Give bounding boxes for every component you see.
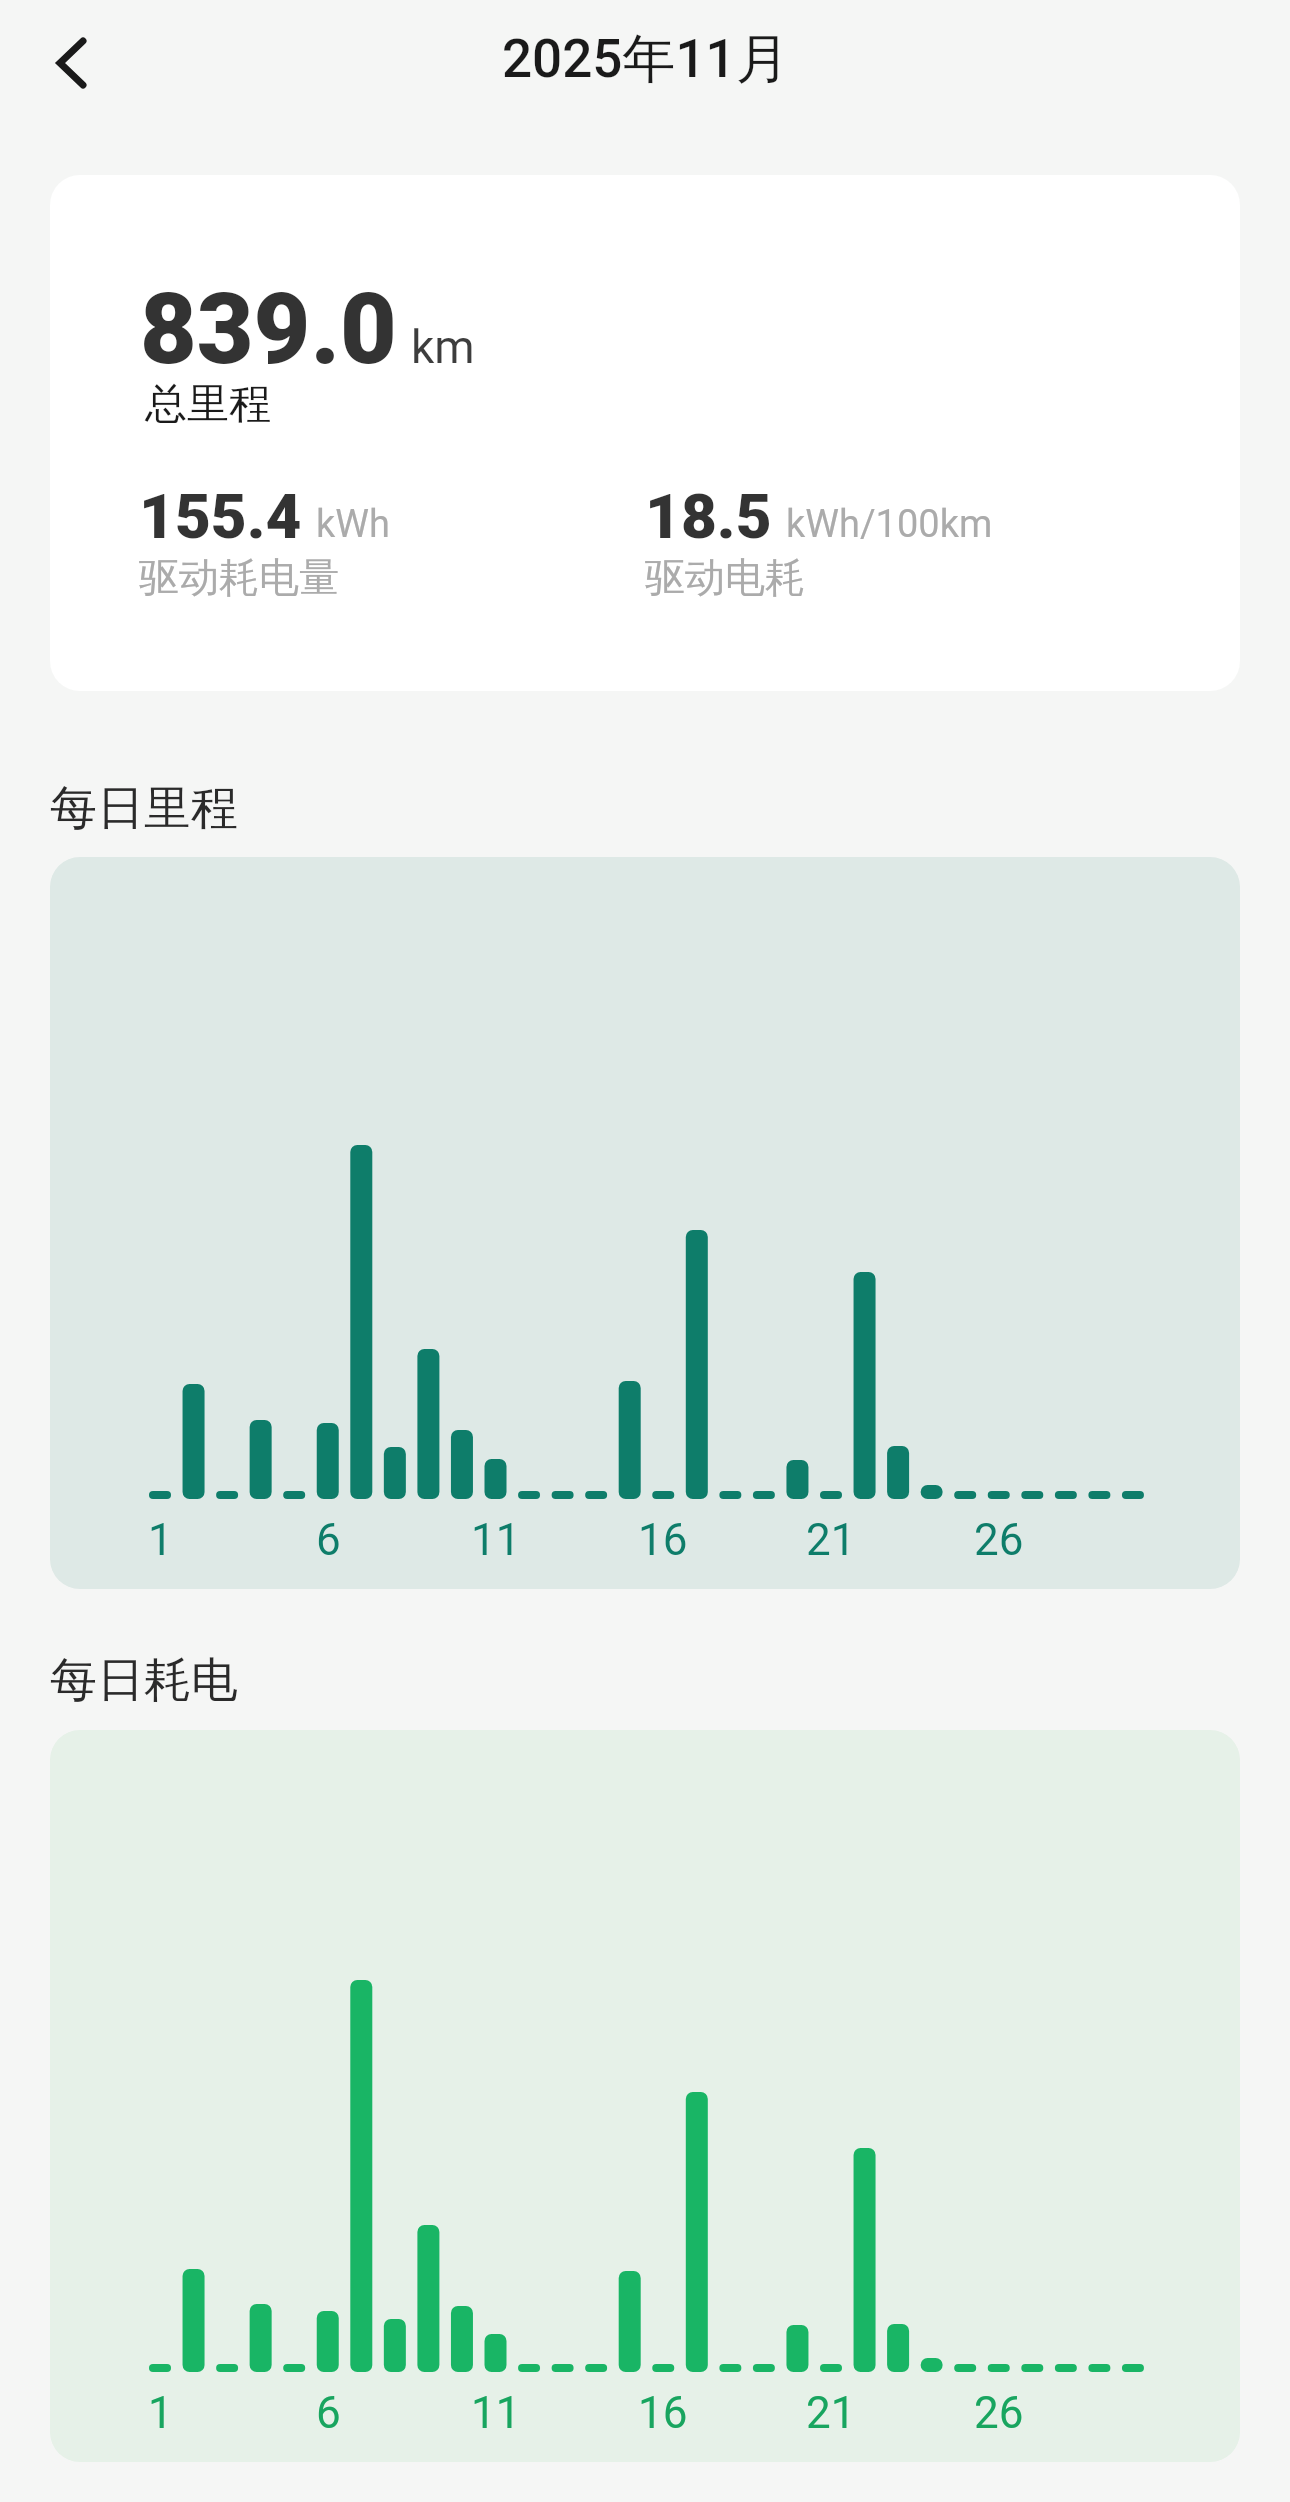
staticText: 1 [148,1514,173,1560]
staticText: 2025年11月 [502,26,789,93]
staticText: kWh/100km [786,502,993,547]
button[interactable] [40,30,106,96]
staticText: 18.5 [645,480,772,553]
staticText: 每日耗电 [50,1651,238,1710]
staticText: 21 [806,2387,856,2433]
staticText: 155.4 [139,480,302,553]
staticText: kWh [316,502,390,547]
staticText: 839.0 [140,272,397,387]
staticText: km [411,320,475,374]
staticText: 驱动电耗 [645,552,805,602]
staticText: 11 [471,1514,521,1560]
staticText: 驱动耗电量 [139,552,339,602]
staticText: 每日里程 [50,779,238,838]
staticText: 11 [471,2387,521,2433]
staticText: 6 [316,1514,341,1560]
staticText: 6 [316,2387,341,2433]
staticText: 总里程 [145,378,271,431]
staticText: 26 [974,2387,1024,2433]
staticText: 21 [806,1514,856,1560]
staticText: 16 [638,2387,688,2433]
staticText: 16 [638,1514,688,1560]
staticText: 26 [974,1514,1024,1560]
staticText: 1 [148,2387,173,2433]
